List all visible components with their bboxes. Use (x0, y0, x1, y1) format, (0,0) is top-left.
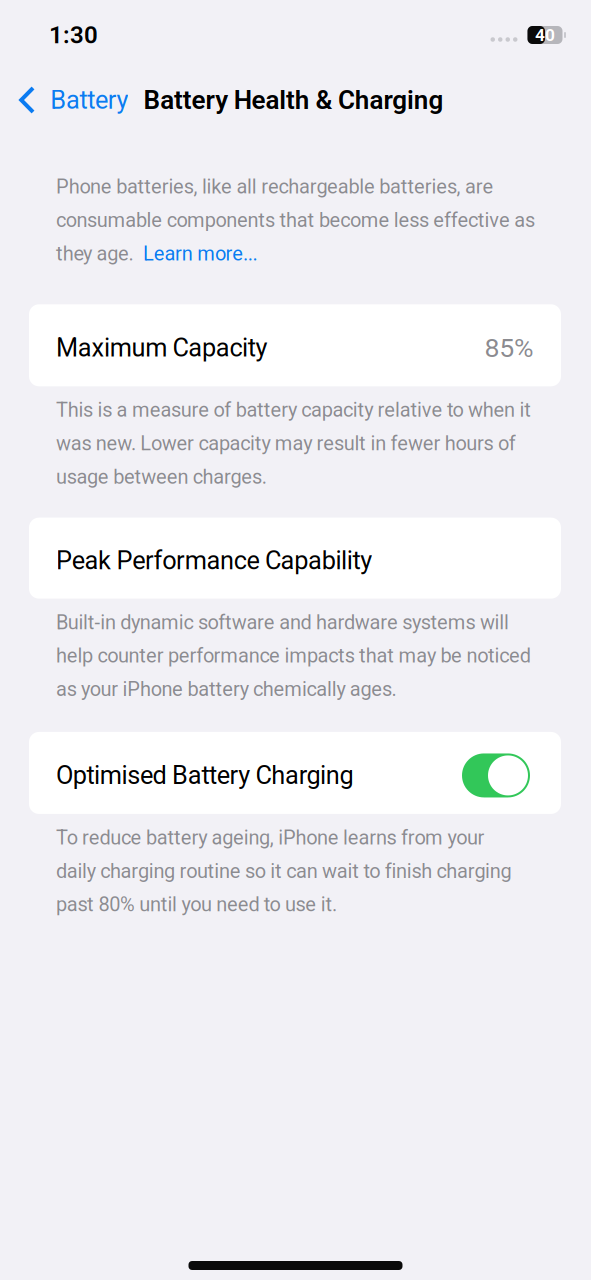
staticText: daily charging routine so it can wait to… (56, 859, 511, 883)
staticText: as your iPhone battery chemically ages. (56, 677, 397, 701)
staticText: consumable components that become less e… (56, 208, 535, 232)
staticText: they age. (56, 242, 143, 265)
button[interactable]: Maximum Capacity (0, 304, 591, 386)
staticText: 85% (485, 332, 534, 363)
staticText: Phone batteries, like all rechargeable b… (56, 175, 493, 198)
staticText: help counter performance impacts that ma… (56, 644, 531, 667)
staticText: This is a measure of battery capacity re… (56, 398, 531, 422)
staticText: Maximum Capacity (56, 333, 267, 363)
staticText: Learn more... (143, 242, 257, 265)
staticText: 40 (535, 25, 555, 45)
button[interactable]: Battery (0, 78, 138, 122)
staticText: Battery Health & Charging (143, 85, 444, 115)
staticText: Built-in dynamic software and hardware s… (56, 611, 509, 634)
staticText: usage between charges. (56, 465, 267, 489)
staticText: past 80% until you need to use it. (56, 893, 337, 916)
staticText: Battery (50, 85, 128, 115)
staticText: 1:30 (49, 21, 98, 49)
staticText: Optimised Battery Charging (56, 761, 353, 790)
staticText: To reduce battery ageing, iPhone learns … (56, 826, 485, 849)
button[interactable]: Learn more... (143, 242, 257, 265)
staticText: Peak Performance Capability (56, 546, 372, 575)
staticText: was new. Lower capacity may result in fe… (56, 432, 516, 455)
button[interactable]: Optimised Battery Charging (462, 753, 530, 797)
button[interactable]: Peak Performance Capability (0, 518, 591, 599)
